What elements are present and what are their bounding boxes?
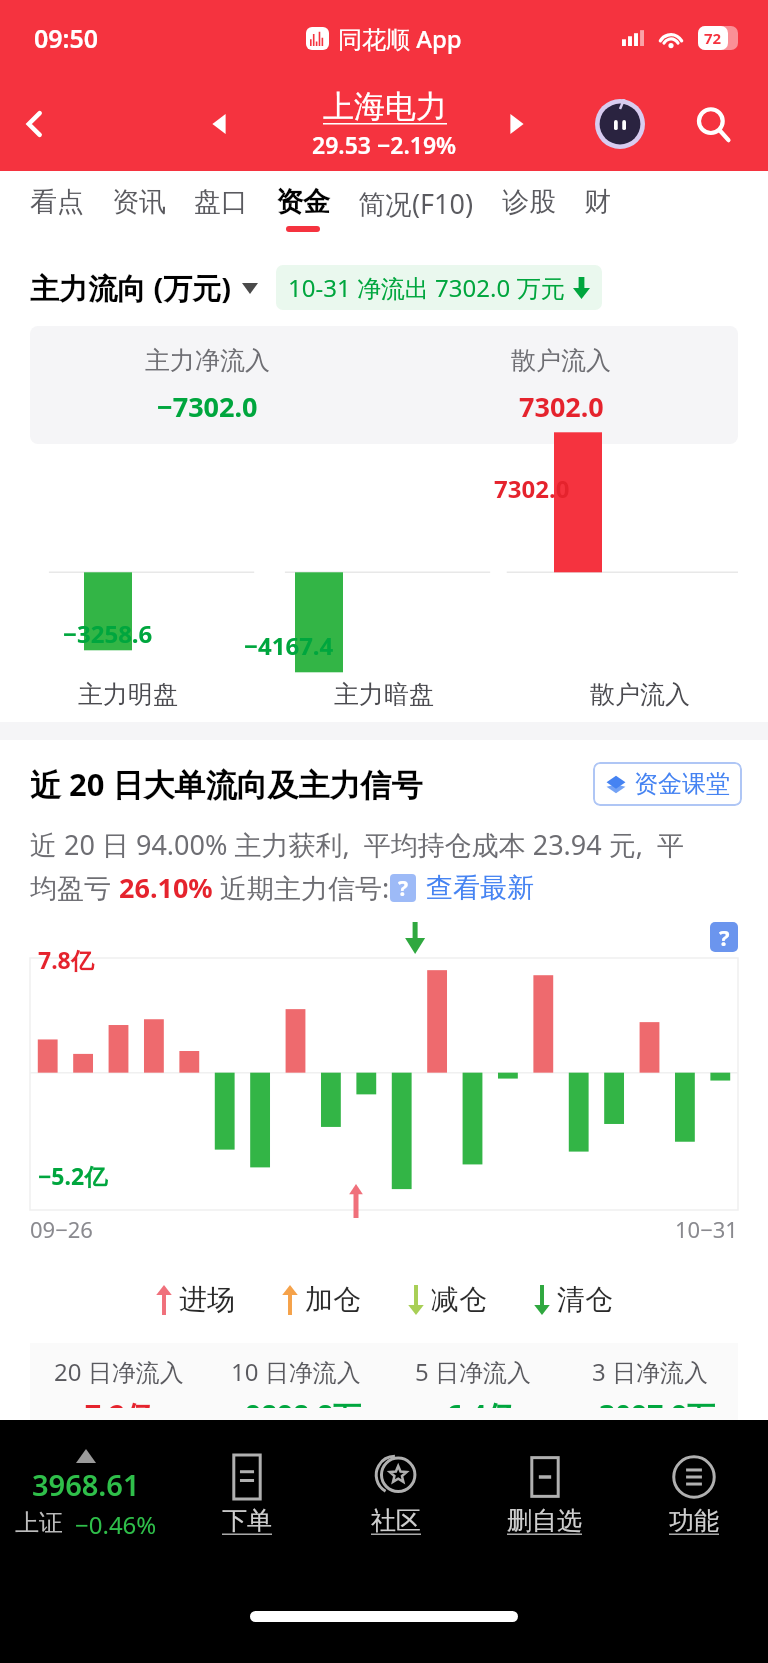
staticText: −5.2亿 [38, 1160, 108, 1191]
staticText: 26.10% [119, 869, 213, 906]
button[interactable]: Next stock [486, 94, 546, 154]
button[interactable]: 看点 [30, 171, 84, 249]
staticText: 3 日净流入 [592, 1355, 708, 1388]
staticText: 10−31 [675, 1214, 738, 1244]
staticText: 10 日净流入 [231, 1355, 361, 1388]
staticText: −6.4亿 [430, 1396, 515, 1408]
staticText: 同花顺 App [338, 22, 462, 55]
staticText: −4167.4 [244, 629, 334, 662]
staticText: 减仓 [431, 1282, 487, 1317]
staticText: 加仓 [305, 1282, 361, 1317]
staticText: 09:50 [34, 21, 99, 55]
staticText: ? [719, 922, 730, 952]
staticText: −9898.8万 [229, 1396, 362, 1408]
staticText: −3097.9万 [583, 1396, 716, 1408]
staticText: 主力流向 (万元) [30, 268, 232, 308]
staticText: 09−26 [30, 1214, 93, 1244]
staticText: 资金 [276, 185, 330, 219]
staticText: 资讯 [112, 185, 166, 219]
button[interactable]: 3 日净流入 [561, 1343, 738, 1420]
staticText: 10-31 净流出 7302.0 万元 [288, 271, 565, 304]
staticText: 进场 [179, 1282, 235, 1317]
staticText: 近 20 日 94.00% 主力获利, 平均持仓成本 23.94 元, 平 [30, 826, 685, 863]
staticText: 近期主力信号: [213, 869, 390, 906]
button[interactable]: 20 日净流入 [30, 1343, 207, 1420]
button[interactable]: 资讯 [112, 171, 166, 249]
button[interactable]: 诊股 [502, 171, 556, 249]
staticText: 功能 [669, 1505, 719, 1536]
button[interactable]: 散户流入 [384, 326, 738, 444]
staticText: 7302.0 [494, 472, 570, 505]
staticText: −7302.0 [157, 388, 258, 425]
staticText: 社区 [371, 1505, 421, 1536]
staticText: 上海电力 [323, 87, 447, 126]
button[interactable]: 10-31 净流出 7302.0 万元 [276, 265, 602, 310]
button[interactable]: 下单 [172, 1455, 321, 1536]
staticText: 均盈亏 [30, 869, 119, 906]
button[interactable]: 上海电力 [312, 87, 457, 160]
button[interactable]: AI assistant [587, 91, 653, 157]
staticText: −0.46% [75, 1508, 157, 1541]
staticText: 下单 [222, 1505, 272, 1536]
button[interactable]: Help [390, 874, 416, 902]
button[interactable]: Chart help [710, 922, 738, 952]
button[interactable]: Previous stock [190, 94, 250, 154]
button[interactable]: 主力净流入 [30, 326, 384, 444]
button[interactable]: 主力流向 (万元) [30, 268, 258, 308]
button[interactable]: Back [0, 89, 70, 159]
staticText: 7.2亿 [85, 1396, 153, 1408]
staticText: 主力净流入 [145, 345, 270, 376]
staticText: 盘口 [194, 185, 248, 219]
staticText: −3258.6 [63, 617, 153, 650]
button[interactable]: 10 日净流入 [207, 1343, 384, 1420]
button[interactable]: 查看最新 [426, 871, 534, 905]
button[interactable]: 3968.61 [0, 1449, 172, 1541]
button[interactable]: 清仓 [533, 1282, 613, 1317]
staticText: 主力明盘 [78, 679, 178, 710]
staticText: 散户流入 [511, 345, 611, 376]
staticText: 29.53 −2.19% [312, 129, 457, 160]
button[interactable]: 社区 [321, 1455, 470, 1536]
staticText: 7.8亿 [38, 944, 94, 975]
button[interactable]: 盘口 [194, 171, 248, 249]
button[interactable]: 财 [584, 171, 611, 249]
staticText: 7302.0 [519, 388, 604, 425]
button[interactable]: 加仓 [281, 1282, 361, 1317]
staticText: 删自选 [507, 1505, 582, 1536]
staticText: 诊股 [502, 185, 556, 219]
button[interactable]: 删自选 [470, 1455, 619, 1536]
staticText: 72 [704, 28, 722, 48]
button[interactable]: 资金 [276, 171, 330, 249]
button[interactable]: 减仓 [407, 1282, 487, 1317]
staticText: 资金课堂 [634, 769, 730, 799]
button[interactable]: 功能 [619, 1455, 768, 1536]
button[interactable]: 资金课堂 [593, 762, 742, 806]
button[interactable]: 进场 [155, 1282, 235, 1317]
staticText: 5 日净流入 [415, 1355, 531, 1388]
button[interactable]: 5 日净流入 [384, 1343, 561, 1420]
staticText: ? [398, 874, 409, 902]
staticText: 近 20 日大单流向及主力信号 [30, 763, 423, 805]
staticText: 主力暗盘 [334, 679, 434, 710]
button[interactable]: 简况(F10) [358, 171, 474, 249]
staticText: 简况(F10) [358, 185, 474, 222]
staticText: 散户流入 [590, 679, 690, 710]
staticText: 财 [584, 185, 611, 219]
staticText: 20 日净流入 [54, 1355, 184, 1388]
staticText: 上证 [15, 1508, 63, 1538]
staticText: 清仓 [557, 1282, 613, 1317]
staticText: 3968.61 [32, 1465, 140, 1504]
button[interactable]: Search [680, 91, 746, 157]
staticText: 看点 [30, 185, 84, 219]
